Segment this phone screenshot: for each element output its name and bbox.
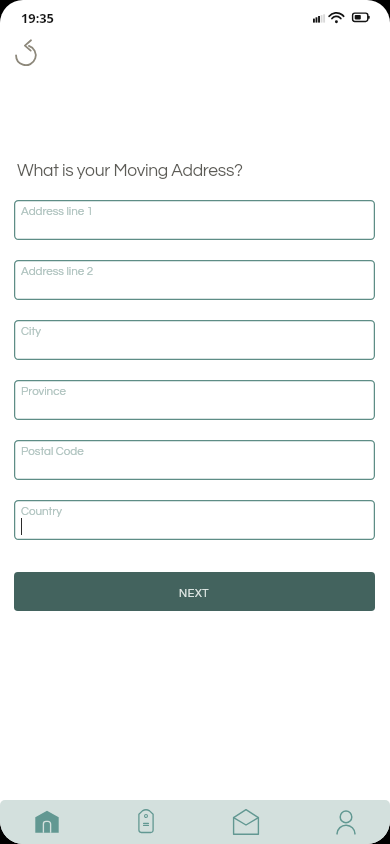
button[interactable]: Province (14, 380, 375, 420)
button[interactable]: Profile (324, 802, 368, 842)
button[interactable]: Address line 2 (14, 260, 375, 300)
button[interactable]: City (14, 320, 375, 360)
staticText: Postal Code (21, 445, 84, 457)
button[interactable]: NEXT (14, 572, 375, 611)
staticText: Country (21, 505, 63, 517)
button[interactable]: Home (25, 802, 69, 842)
button[interactable]: Postal Code (14, 440, 375, 480)
staticText: Address line 2 (21, 265, 94, 277)
button[interactable]: Back (8, 38, 44, 74)
staticText: Address line 1 (21, 205, 94, 217)
button[interactable]: Tags (124, 802, 168, 842)
staticText: NEXT (179, 588, 210, 599)
button[interactable]: Country (14, 500, 375, 540)
staticText: Province (21, 385, 66, 397)
staticText: 19:35 (21, 9, 54, 26)
button[interactable]: Address line 1 (14, 200, 375, 240)
button[interactable]: Messages (224, 802, 268, 842)
staticText: City (21, 325, 41, 337)
staticText: What is your Moving Address? (17, 162, 243, 180)
